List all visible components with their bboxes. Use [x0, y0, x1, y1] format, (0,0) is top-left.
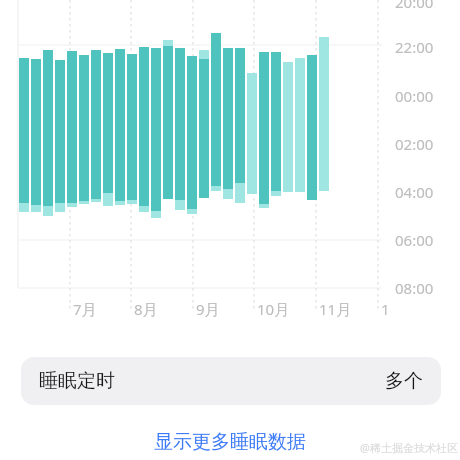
button[interactable] [130, 428, 330, 456]
button[interactable]: 睡眠定时 多个 [21, 357, 441, 405]
